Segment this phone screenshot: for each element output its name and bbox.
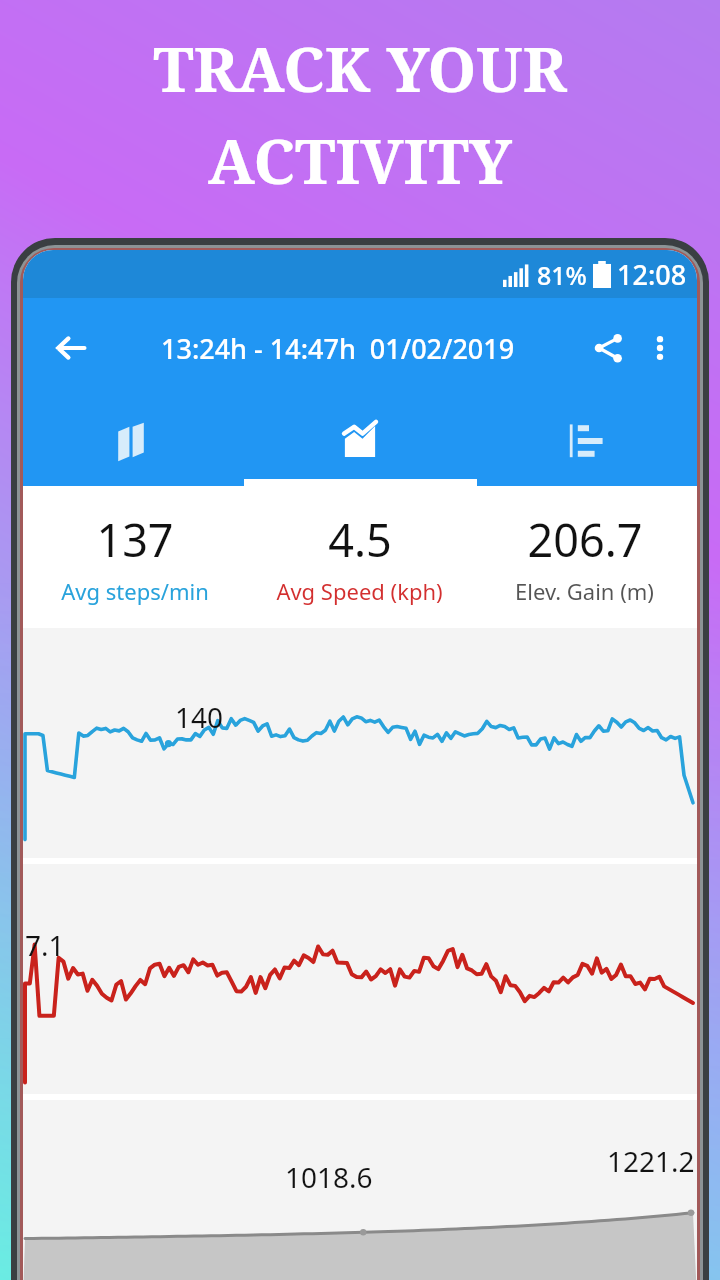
staticText: ACTIVITY — [208, 118, 512, 202]
staticText: 12:08 — [617, 256, 687, 293]
staticText: TRACK YOUR — [153, 26, 567, 110]
button[interactable]: Share — [581, 321, 635, 375]
staticText: 1221.2 — [607, 1142, 695, 1180]
staticText: 81% — [537, 258, 587, 292]
button[interactable]: More options — [635, 323, 685, 373]
staticText: Elev. Gain (m) — [515, 576, 654, 606]
staticText: 137 — [96, 509, 174, 570]
button[interactable]: Back — [45, 322, 97, 374]
staticText: 4.5 — [328, 509, 392, 570]
button[interactable]: Stats tab — [472, 398, 697, 486]
staticText: 13:24h - 14:47h 01/02/2019 — [161, 330, 515, 367]
button[interactable]: Map tab — [23, 398, 247, 486]
staticText: 206.7 — [527, 509, 643, 570]
button[interactable]: 206.7 — [472, 509, 697, 606]
button[interactable]: 137 — [23, 509, 247, 606]
staticText: Avg steps/min — [61, 576, 209, 606]
staticText: 7.1 — [25, 926, 65, 964]
staticText: 140 — [175, 698, 224, 736]
button[interactable]: Chart tab — [247, 398, 472, 486]
staticText: Avg Speed (kph) — [276, 576, 443, 606]
staticText: 1018.6 — [285, 1158, 373, 1196]
button[interactable]: 4.5 — [247, 509, 472, 606]
